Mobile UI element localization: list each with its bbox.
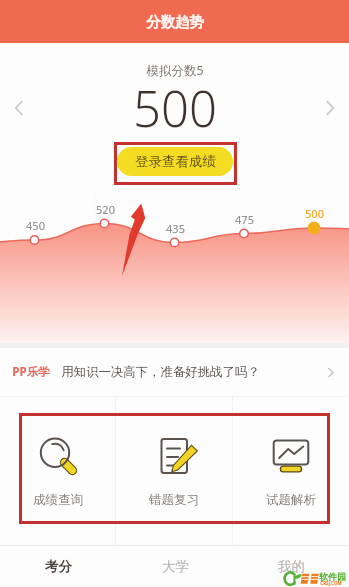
- staticText: 模拟分数5: [146, 62, 204, 79]
- staticText: 软件园: [319, 571, 346, 582]
- staticText: 成绩查询: [33, 492, 83, 508]
- button[interactable]: 我的: [233, 546, 349, 587]
- button[interactable]: 试题解析: [233, 397, 349, 545]
- staticText: 错题复习: [149, 492, 199, 508]
- staticText: 435: [166, 221, 185, 236]
- staticText: 500: [305, 206, 324, 221]
- button[interactable]: 登录查看成绩: [117, 147, 233, 176]
- button[interactable]: 成绩查询: [0, 397, 115, 545]
- staticText: 我的: [278, 558, 305, 575]
- staticText: 考分: [45, 558, 72, 575]
- staticText: CRSJ.COM: [320, 580, 342, 586]
- staticText: 分数趋势: [146, 13, 204, 31]
- staticText: 大学: [162, 558, 189, 575]
- staticText: 试题解析: [266, 492, 316, 508]
- staticText: 450: [26, 218, 45, 233]
- staticText: 用知识一决高下，准备好挑战了吗？: [61, 364, 260, 380]
- staticText: 500: [133, 75, 217, 142]
- staticText: 475: [235, 212, 254, 227]
- button[interactable]: 错题复习: [116, 397, 232, 545]
- staticText: PP乐学: [12, 364, 50, 380]
- button[interactable]: Previous score: [7, 96, 31, 120]
- staticText: 登录查看成绩: [135, 153, 216, 170]
- button[interactable]: 大学: [117, 546, 233, 587]
- button[interactable]: 考分: [0, 546, 117, 587]
- button[interactable]: Next score: [318, 96, 342, 120]
- button[interactable]: PP乐学: [0, 348, 349, 396]
- staticText: 520: [96, 202, 115, 217]
